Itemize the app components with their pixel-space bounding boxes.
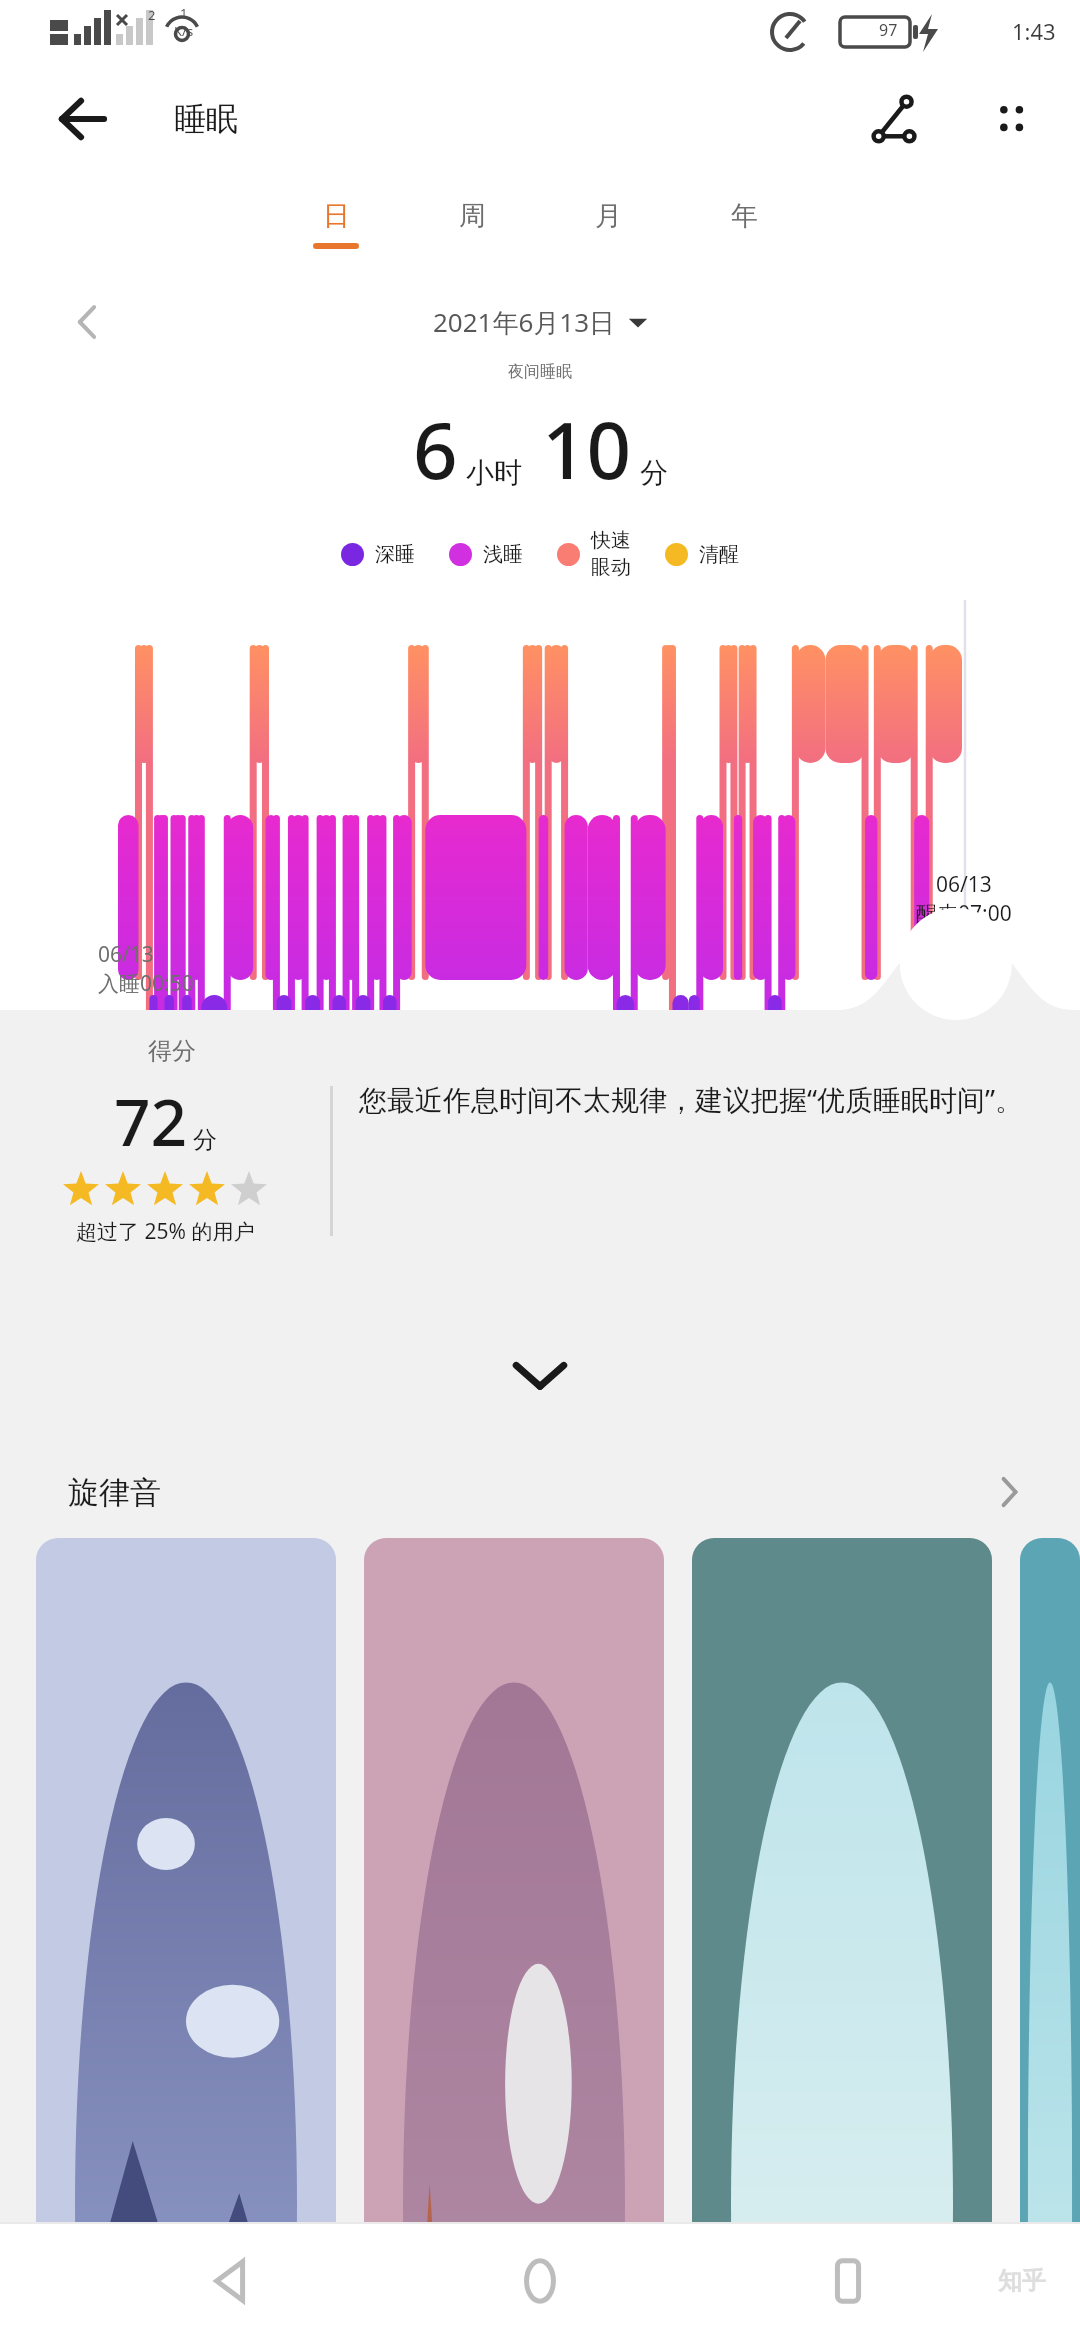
staticText: 小时 <box>466 455 522 490</box>
button[interactable]: 月 <box>540 176 676 272</box>
staticText: 年 <box>731 199 758 233</box>
button[interactable]: Back <box>158 2222 308 2340</box>
staticText: K/s <box>174 22 194 40</box>
button[interactable]: Previous day <box>58 292 118 352</box>
staticText: 浅睡 <box>483 542 523 567</box>
staticText: 2 <box>148 6 156 24</box>
staticText: 10 <box>542 396 632 502</box>
staticText: 睡眠 <box>174 99 238 139</box>
staticText: 旋律音 <box>68 1473 161 1512</box>
staticText: 超过了 25% 的用户 <box>76 1217 255 1246</box>
staticText: 醒来07:00 <box>916 899 1012 928</box>
staticText: 清醒 <box>699 542 739 567</box>
button[interactable]: Expand <box>480 1340 600 1410</box>
button[interactable] <box>1020 1538 1080 2340</box>
staticText: 快速 眼动 <box>591 528 631 580</box>
staticText: 06/13 <box>936 870 992 899</box>
button[interactable] <box>364 1538 664 2340</box>
staticText: 6 <box>413 396 458 502</box>
staticText: 06/13 <box>98 940 154 969</box>
button[interactable]: Recent apps <box>773 2222 923 2340</box>
staticText: 入睡00:50 <box>98 969 194 998</box>
staticText: 夜间睡眠 <box>0 362 1080 382</box>
staticText: 日 <box>323 199 350 233</box>
button[interactable]: Back <box>48 84 118 154</box>
button[interactable]: Home <box>465 2222 615 2340</box>
button[interactable]: 2021年6月13日 <box>433 304 648 340</box>
staticText: 月 <box>595 199 622 233</box>
staticText: 知乎 <box>998 2266 1046 2296</box>
button[interactable]: 旋律音 <box>0 1446 1080 1538</box>
staticText: 分 <box>640 455 668 490</box>
button[interactable] <box>692 1538 992 2340</box>
staticText: 97 <box>879 19 898 41</box>
button[interactable]: Share <box>858 82 932 156</box>
button[interactable]: 周 <box>404 176 540 272</box>
staticText: 深睡 <box>375 542 415 567</box>
staticText: 分 <box>193 1125 217 1155</box>
staticText: 1 <box>180 4 188 22</box>
staticText: 得分 <box>148 1036 196 1066</box>
button[interactable]: 日 <box>268 176 404 272</box>
button[interactable]: More options <box>974 82 1048 156</box>
staticText: 周 <box>459 199 486 233</box>
button[interactable] <box>36 1538 336 2340</box>
staticText: 72 <box>114 1078 188 1165</box>
staticText: 您最近作息时间不太规律，建议把握“优质睡眠时间”。 <box>359 1080 1024 1118</box>
staticText: 2021年6月13日 <box>433 304 616 340</box>
button[interactable]: 年 <box>676 176 812 272</box>
staticText: 1:43 <box>1012 16 1056 46</box>
